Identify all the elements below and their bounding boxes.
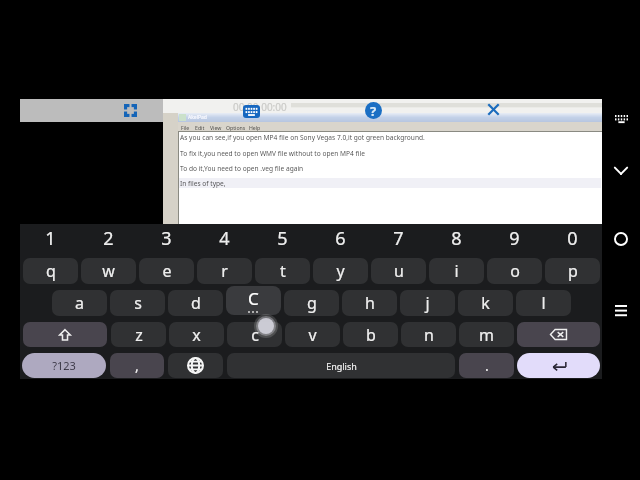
staticText: AkelPad <box>188 114 207 121</box>
button[interactable]: 4 <box>197 224 252 253</box>
button[interactable]: Close <box>487 103 500 116</box>
staticText: e <box>162 260 172 282</box>
staticText: o <box>510 260 520 282</box>
button[interactable]: i <box>429 258 484 284</box>
staticText: 6 <box>335 226 346 251</box>
staticText: v <box>308 324 317 346</box>
staticText: z <box>135 324 143 346</box>
staticText: 7 <box>393 226 404 251</box>
button[interactable]: 1 <box>23 224 78 253</box>
staticText: c <box>251 324 259 346</box>
staticText: View <box>210 124 222 131</box>
staticText: t <box>280 260 286 282</box>
staticText: 2 <box>103 226 114 251</box>
button[interactable]: , <box>110 353 164 378</box>
button[interactable]: Recent apps <box>609 298 633 322</box>
button[interactable]: 9 <box>487 224 542 253</box>
button[interactable]: 8 <box>429 224 484 253</box>
button[interactable]: Help <box>365 102 382 119</box>
button[interactable]: Hide keyboard <box>609 107 633 131</box>
button[interactable]: n <box>401 322 456 347</box>
button[interactable]: 2 <box>81 224 136 253</box>
staticText: To fix it,you need to open WMV file with… <box>180 149 365 158</box>
staticText: 9 <box>509 226 520 251</box>
button[interactable]: English <box>227 353 455 378</box>
staticText: k <box>481 292 490 314</box>
button[interactable]: p <box>545 258 600 284</box>
button[interactable]: 0 <box>545 224 600 253</box>
staticText: 4 <box>219 226 230 251</box>
staticText: u <box>394 260 404 282</box>
staticText: n <box>424 324 434 346</box>
staticText: h <box>365 292 375 314</box>
button[interactable]: 6 <box>313 224 368 253</box>
staticText: a <box>75 292 84 314</box>
button[interactable]: r <box>197 258 252 284</box>
button[interactable]: y <box>313 258 368 284</box>
staticText: ?123 <box>52 358 76 373</box>
button[interactable]: w <box>81 258 136 284</box>
button[interactable]: Backspace <box>517 322 600 347</box>
button[interactable]: j <box>400 290 455 316</box>
staticText: l <box>541 292 546 314</box>
staticText: q <box>46 260 56 282</box>
button[interactable]: Back <box>609 158 633 182</box>
staticText: b <box>366 324 376 346</box>
button[interactable]: m <box>459 322 514 347</box>
staticText: 00:00 00:00 <box>233 100 287 114</box>
button[interactable]: 3 <box>139 224 194 253</box>
staticText: j <box>425 292 430 314</box>
button[interactable]: g <box>284 290 339 316</box>
button[interactable]: ?123 <box>22 353 106 378</box>
button[interactable]: Enter <box>517 353 600 378</box>
button[interactable]: 7 <box>371 224 426 253</box>
button[interactable]: c <box>227 322 282 347</box>
button[interactable]: x <box>169 322 224 347</box>
button[interactable]: q <box>23 258 78 284</box>
staticText: Edit <box>195 124 205 131</box>
staticText: File <box>181 124 190 131</box>
staticText: y <box>336 260 345 282</box>
button[interactable]: 5 <box>255 224 310 253</box>
button[interactable]: Show keyboard <box>243 105 260 118</box>
staticText: s <box>134 292 142 314</box>
button[interactable]: e <box>139 258 194 284</box>
staticText: 1 <box>45 226 56 251</box>
staticText: ? <box>370 102 377 119</box>
staticText: English <box>326 360 357 372</box>
button[interactable]: v <box>285 322 340 347</box>
button[interactable]: d <box>168 290 223 316</box>
staticText: 3 <box>161 226 172 251</box>
button[interactable]: Change language <box>168 353 223 378</box>
button[interactable]: b <box>343 322 398 347</box>
staticText: i <box>454 260 459 282</box>
button[interactable]: k <box>458 290 513 316</box>
staticText: d <box>191 292 201 314</box>
button[interactable]: . <box>459 353 514 378</box>
staticText: , <box>135 356 139 375</box>
button[interactable]: Home <box>609 227 633 251</box>
button[interactable]: l <box>516 290 571 316</box>
button[interactable]: s <box>110 290 165 316</box>
staticText: m <box>479 324 494 346</box>
button[interactable]: a <box>52 290 107 316</box>
staticText: r <box>221 260 228 282</box>
staticText: As you can see,if you open MP4 file on S… <box>180 133 425 142</box>
staticText: g <box>307 292 317 314</box>
staticText: 5 <box>277 226 288 251</box>
staticText: p <box>568 260 578 282</box>
button[interactable]: h <box>342 290 397 316</box>
button[interactable]: o <box>487 258 542 284</box>
staticText: Help <box>249 124 261 131</box>
button[interactable]: t <box>255 258 310 284</box>
button[interactable]: z <box>111 322 166 347</box>
staticText: 0 <box>567 226 578 251</box>
staticText: To do it,You need to open .veg file agai… <box>180 164 304 173</box>
staticText: Options <box>226 124 246 131</box>
button[interactable]: C <box>226 286 281 315</box>
staticText: . <box>485 356 489 375</box>
button[interactable]: Shift <box>23 322 107 347</box>
staticText: In files of type, <box>180 179 226 188</box>
button[interactable]: u <box>371 258 426 284</box>
staticText: x <box>192 324 201 346</box>
